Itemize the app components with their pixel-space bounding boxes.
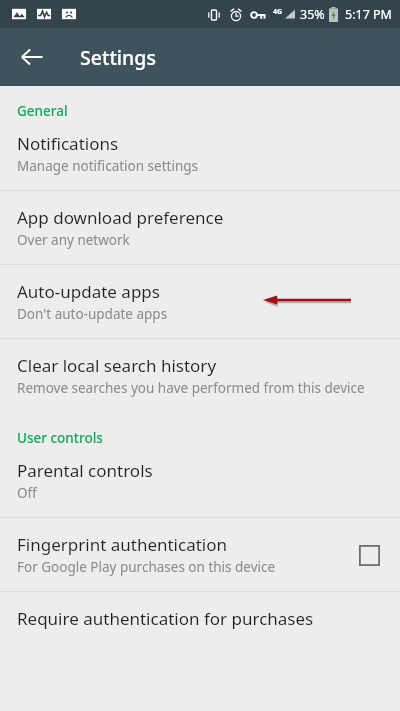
button[interactable]: Auto-update apps xyxy=(0,265,400,338)
staticText: 35% xyxy=(300,6,325,23)
staticText: 5:17 PM xyxy=(345,6,392,23)
staticText: 4G xyxy=(273,7,283,17)
staticText: User controls xyxy=(17,429,103,447)
button[interactable]: Fingerprint authentication xyxy=(0,518,400,591)
staticText: Don't auto-update apps xyxy=(17,305,168,323)
staticText: Fingerprint authentication xyxy=(17,533,228,556)
button[interactable]: Parental controls xyxy=(0,450,400,517)
staticText: Manage notification settings xyxy=(17,157,199,175)
staticText: Remove searches you have performed from … xyxy=(17,379,365,397)
staticText: General xyxy=(17,102,68,120)
button[interactable]: App download preference xyxy=(0,191,400,264)
button[interactable]: Fingerprint authentication toggle xyxy=(355,541,383,569)
button[interactable]: Require authentication for purchases xyxy=(0,592,400,630)
staticText: Notifications xyxy=(17,132,119,155)
staticText: Over any network xyxy=(17,231,130,249)
staticText: Clear local search history xyxy=(17,354,217,377)
staticText: Off xyxy=(17,484,37,502)
staticText: App download preference xyxy=(17,206,224,229)
button[interactable]: Back xyxy=(8,33,56,81)
staticText: Parental controls xyxy=(17,459,153,482)
staticText: Auto-update apps xyxy=(17,280,160,303)
staticText: For Google Play purchases on this device xyxy=(17,558,276,576)
button[interactable]: Clear local search history xyxy=(0,339,400,412)
staticText: Settings xyxy=(80,44,156,71)
button[interactable]: Notifications xyxy=(0,123,400,190)
staticText: Require authentication for purchases xyxy=(17,607,314,630)
